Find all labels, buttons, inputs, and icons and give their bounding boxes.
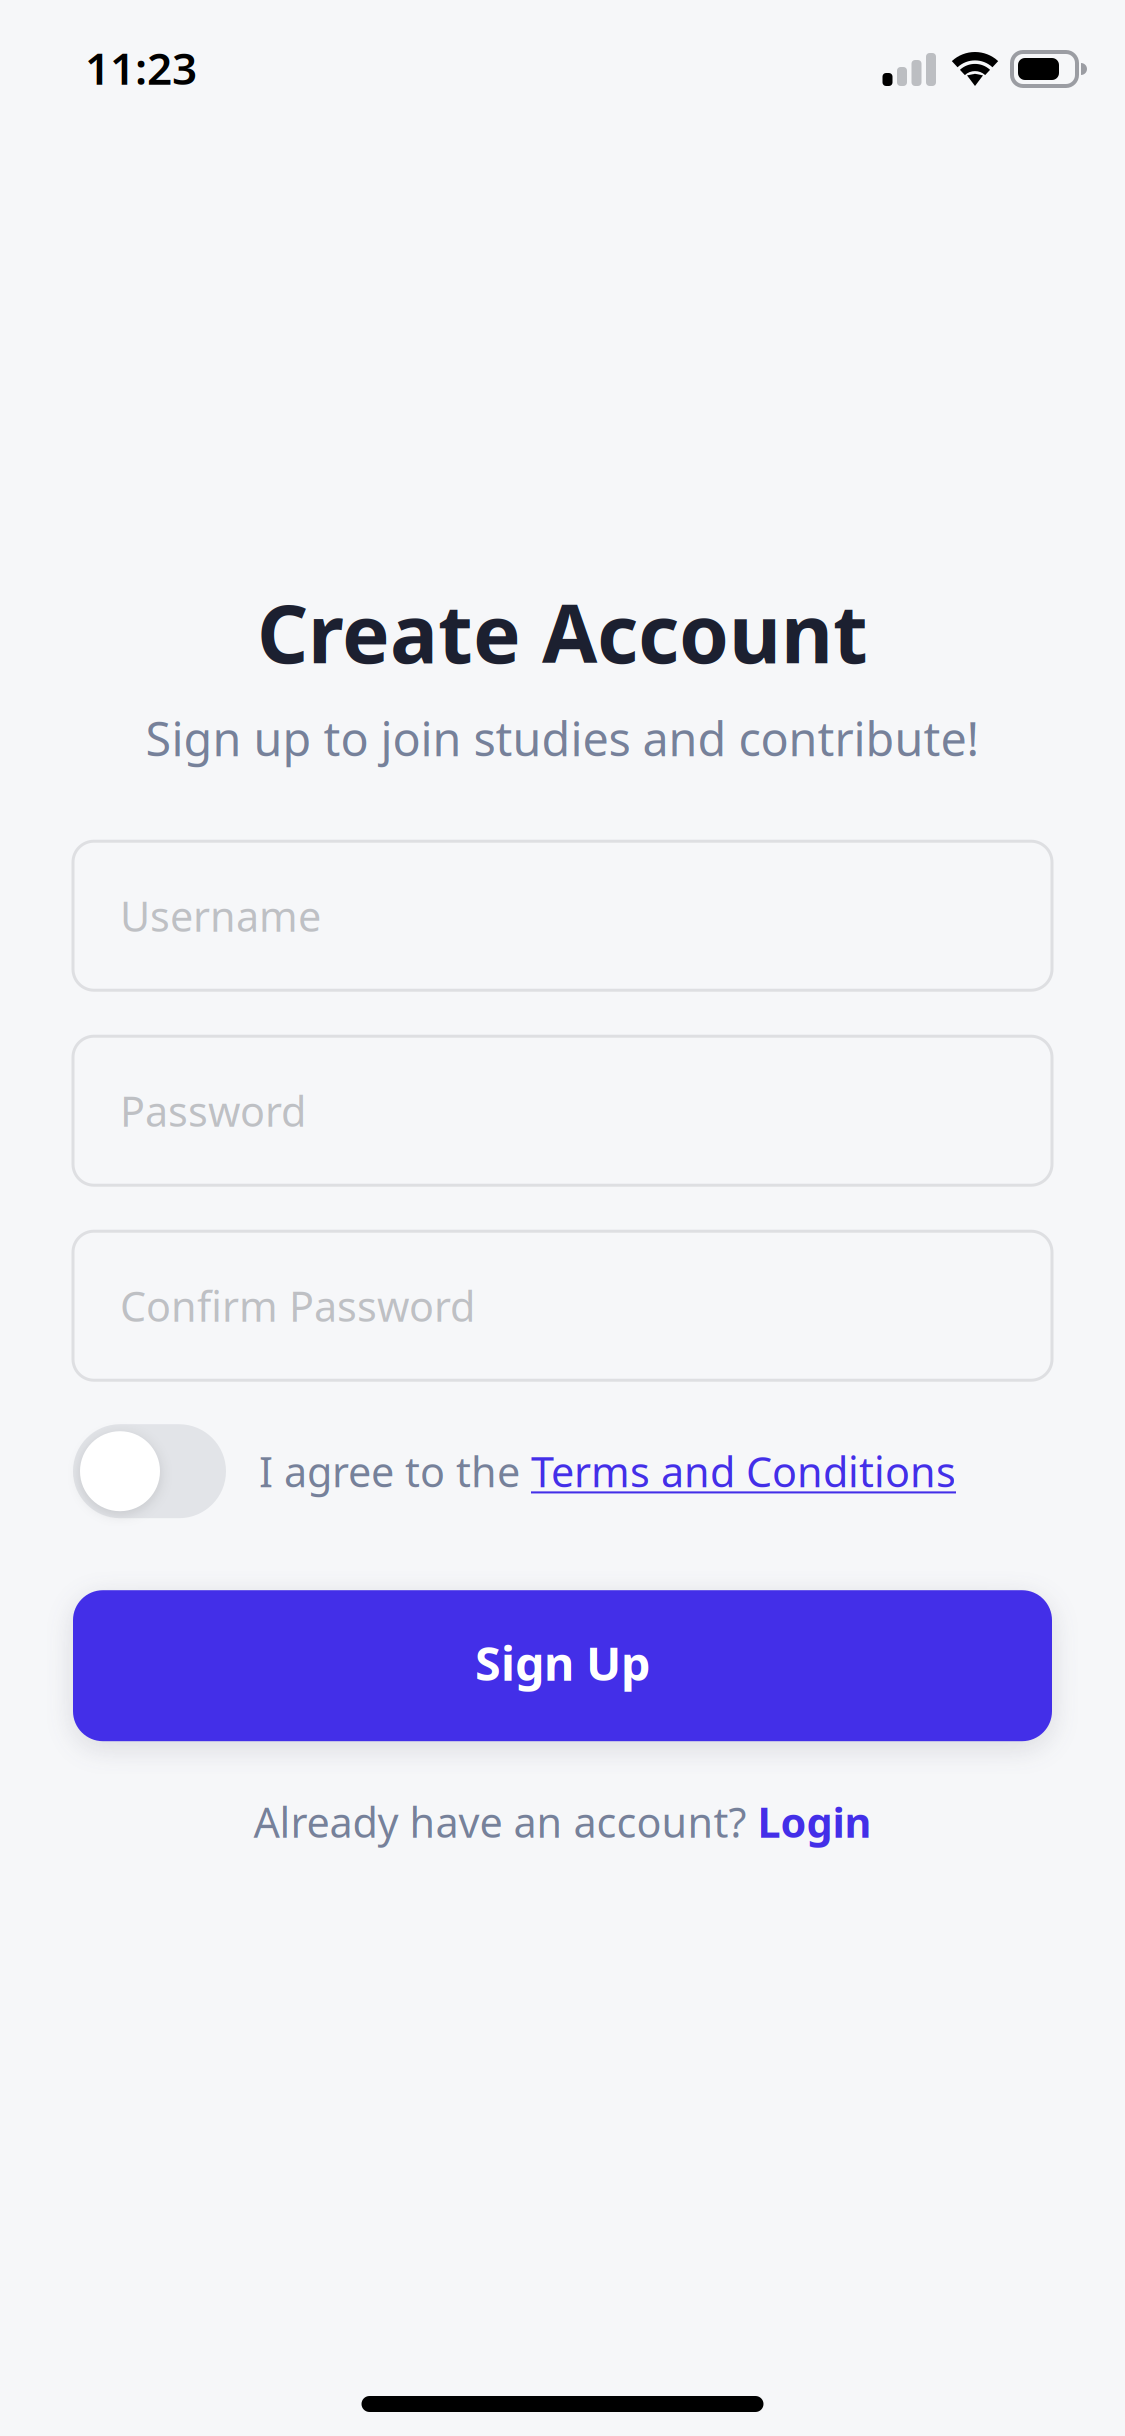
staticText: 11:23 — [85, 39, 197, 97]
button[interactable]: Sign Up — [73, 1590, 1052, 1741]
staticText: Confirm Password — [120, 1278, 475, 1333]
button[interactable]: Confirm Password — [73, 1231, 1052, 1380]
staticText: I agree to the — [259, 1444, 531, 1499]
button[interactable]: Terms and Conditions — [531, 1444, 956, 1499]
staticText: Username — [120, 888, 321, 943]
staticText: Create Account — [257, 579, 868, 685]
button[interactable]: I agree to the Terms and Conditions — [73, 1424, 226, 1518]
staticText: Sign Up — [475, 1632, 650, 1694]
staticText: Password — [120, 1083, 306, 1138]
staticText: Already have an account? — [253, 1794, 757, 1849]
staticText: Login — [757, 1794, 871, 1849]
button[interactable]: Login — [757, 1794, 871, 1849]
button[interactable]: Password — [73, 1036, 1052, 1185]
staticText: Sign up to join studies and contribute! — [145, 707, 979, 769]
staticText: Terms and Conditions — [531, 1444, 956, 1499]
button[interactable]: Username — [73, 841, 1052, 990]
